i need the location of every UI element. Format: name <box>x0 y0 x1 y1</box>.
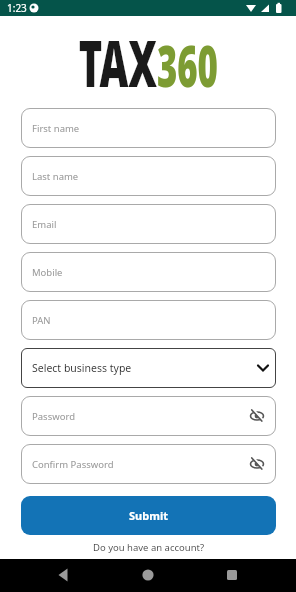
staticText: Email <box>32 218 57 231</box>
staticText: Select business type <box>32 361 132 375</box>
button[interactable]: Submit <box>21 496 276 535</box>
staticText: Do you have an account? <box>93 541 205 554</box>
button[interactable]: First name <box>21 108 276 148</box>
staticText: Mobile <box>32 266 63 279</box>
staticText: Submit <box>129 508 168 523</box>
button[interactable]: Password <box>21 396 276 436</box>
button[interactable] <box>220 563 244 587</box>
button[interactable]: Email <box>21 204 276 244</box>
button[interactable]: Select business type <box>21 348 276 388</box>
button[interactable] <box>136 563 160 587</box>
staticText: PAN <box>32 314 51 327</box>
button[interactable]: Mobile <box>21 252 276 292</box>
button[interactable]: Do you have an account? <box>21 541 276 554</box>
staticText: 1:23 <box>7 1 27 15</box>
button[interactable]: Confirm Password <box>21 444 276 484</box>
staticText: TAX360 <box>79 19 218 106</box>
button[interactable]: Last name <box>21 156 276 196</box>
staticText: Confirm Password <box>32 458 114 471</box>
button[interactable]: PAN <box>21 300 276 340</box>
button[interactable] <box>51 563 75 587</box>
staticText: Last name <box>32 170 79 183</box>
staticText: First name <box>32 122 80 135</box>
staticText: Password <box>32 410 75 423</box>
